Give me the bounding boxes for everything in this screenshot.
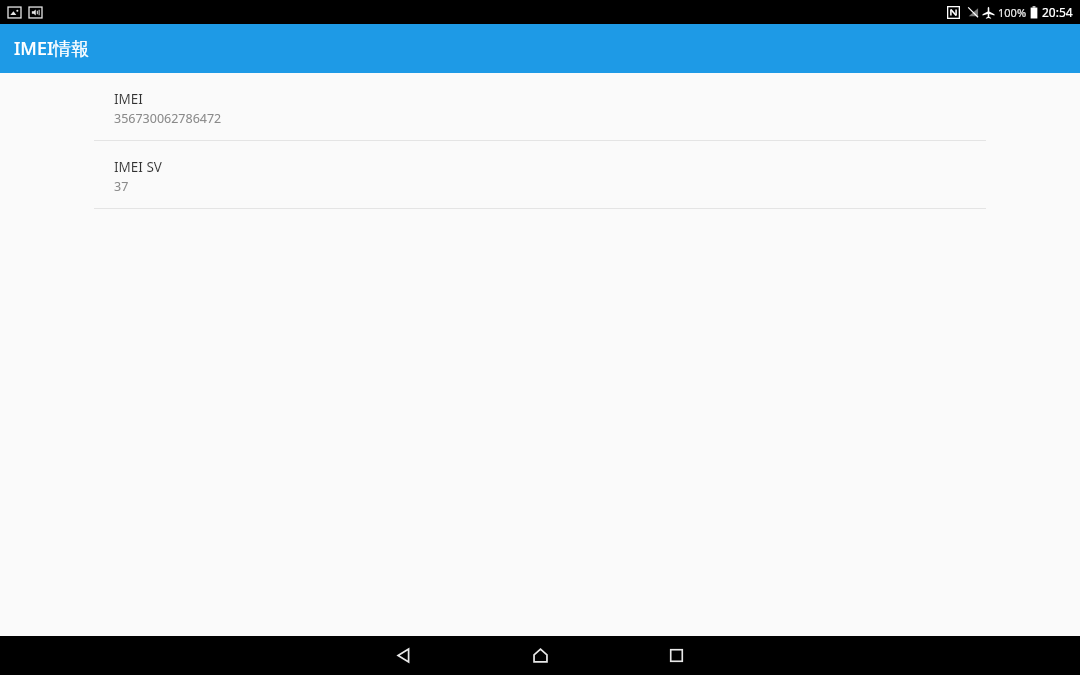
- button[interactable]: IMEI SV: [0, 141, 1080, 209]
- button[interactable]: Back: [383, 636, 423, 675]
- staticText: 356730062786472: [114, 110, 222, 127]
- staticText: IMEI SV: [114, 158, 162, 176]
- button[interactable]: Recent apps: [656, 636, 696, 675]
- button[interactable]: Home: [520, 636, 560, 675]
- staticText: 100%: [998, 5, 1027, 20]
- staticText: 37: [114, 178, 129, 195]
- button[interactable]: IMEI: [0, 73, 1080, 141]
- staticText: 20:54: [1042, 4, 1073, 20]
- staticText: IMEI: [114, 90, 143, 108]
- staticText: IMEI情報: [14, 36, 90, 61]
